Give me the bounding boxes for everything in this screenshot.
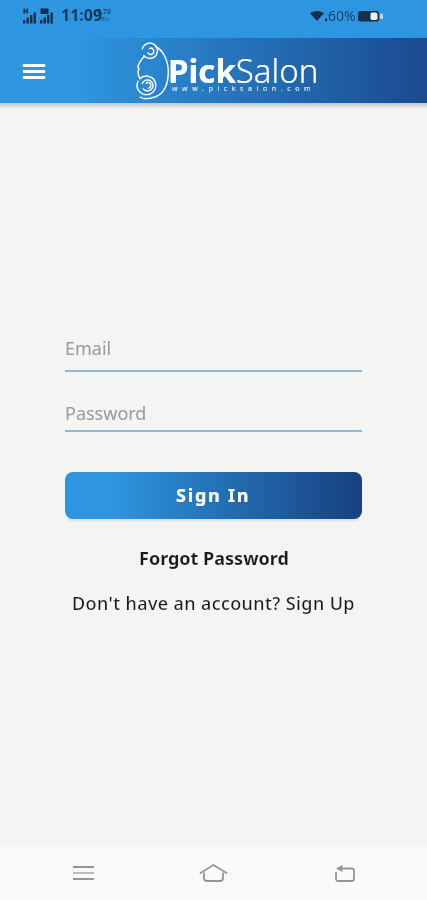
staticText: 60% [328, 6, 356, 25]
staticText: Sign In [176, 483, 251, 508]
button[interactable]: Forgot Password [0, 546, 427, 571]
button[interactable]: Don't have an account? Sign Up [0, 591, 427, 616]
staticText: 11:09 [61, 4, 103, 26]
staticText: 0.70 [97, 7, 111, 17]
staticText: Password [65, 401, 147, 426]
button[interactable]: Password [65, 401, 362, 432]
button[interactable] [320, 851, 369, 895]
staticText: Don't have an account? Sign Up [72, 591, 355, 616]
staticText: KB/s [97, 15, 110, 23]
staticText: Email [65, 336, 112, 361]
staticText: PickSalon [168, 48, 319, 93]
button[interactable] [14, 51, 54, 91]
staticText: Forgot Password [139, 546, 289, 571]
button[interactable] [59, 851, 108, 895]
button[interactable]: Email [65, 336, 362, 372]
staticText: www.picksalon.com [172, 84, 316, 94]
button[interactable]: Sign In [65, 472, 362, 519]
button[interactable] [189, 851, 238, 895]
